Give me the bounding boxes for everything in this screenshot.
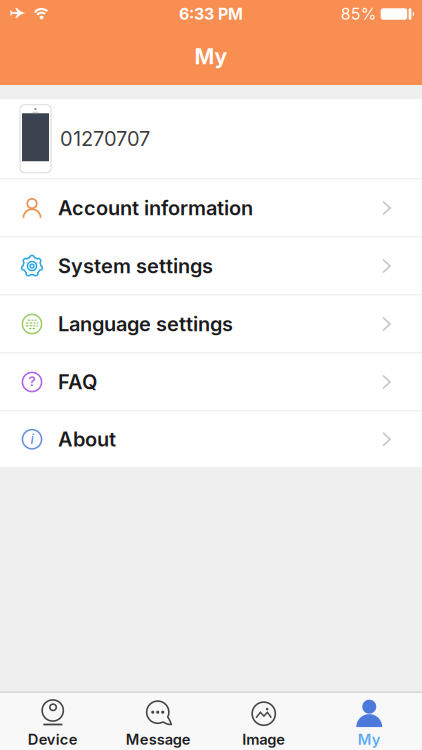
staticText: About [58, 427, 116, 451]
button[interactable]: Device [0, 700, 105, 748]
staticText: Device [28, 731, 78, 748]
button[interactable]: Language settings [0, 295, 422, 352]
button[interactable]: ? [0, 353, 422, 410]
staticText: System settings [58, 254, 213, 278]
staticText: My [194, 44, 227, 69]
staticText: My [358, 731, 381, 748]
staticText: Message [126, 731, 191, 748]
button[interactable]: 01270707 [0, 99, 422, 178]
staticText: FAQ [58, 370, 97, 394]
staticText: 6:33 PM [179, 5, 243, 23]
staticText: Image [242, 731, 285, 748]
button[interactable]: My [316, 700, 422, 748]
button[interactable]: i [0, 411, 422, 467]
staticText: i [30, 431, 33, 447]
button[interactable]: Account information [0, 179, 422, 236]
staticText: Language settings [58, 312, 233, 336]
staticText: Account information [58, 196, 253, 220]
button[interactable]: Image [211, 700, 316, 748]
button[interactable]: Message [105, 700, 211, 748]
staticText: 85% [341, 5, 377, 23]
staticText: ? [28, 374, 35, 389]
staticText: 01270707 [60, 127, 150, 151]
button[interactable]: System settings [0, 237, 422, 294]
